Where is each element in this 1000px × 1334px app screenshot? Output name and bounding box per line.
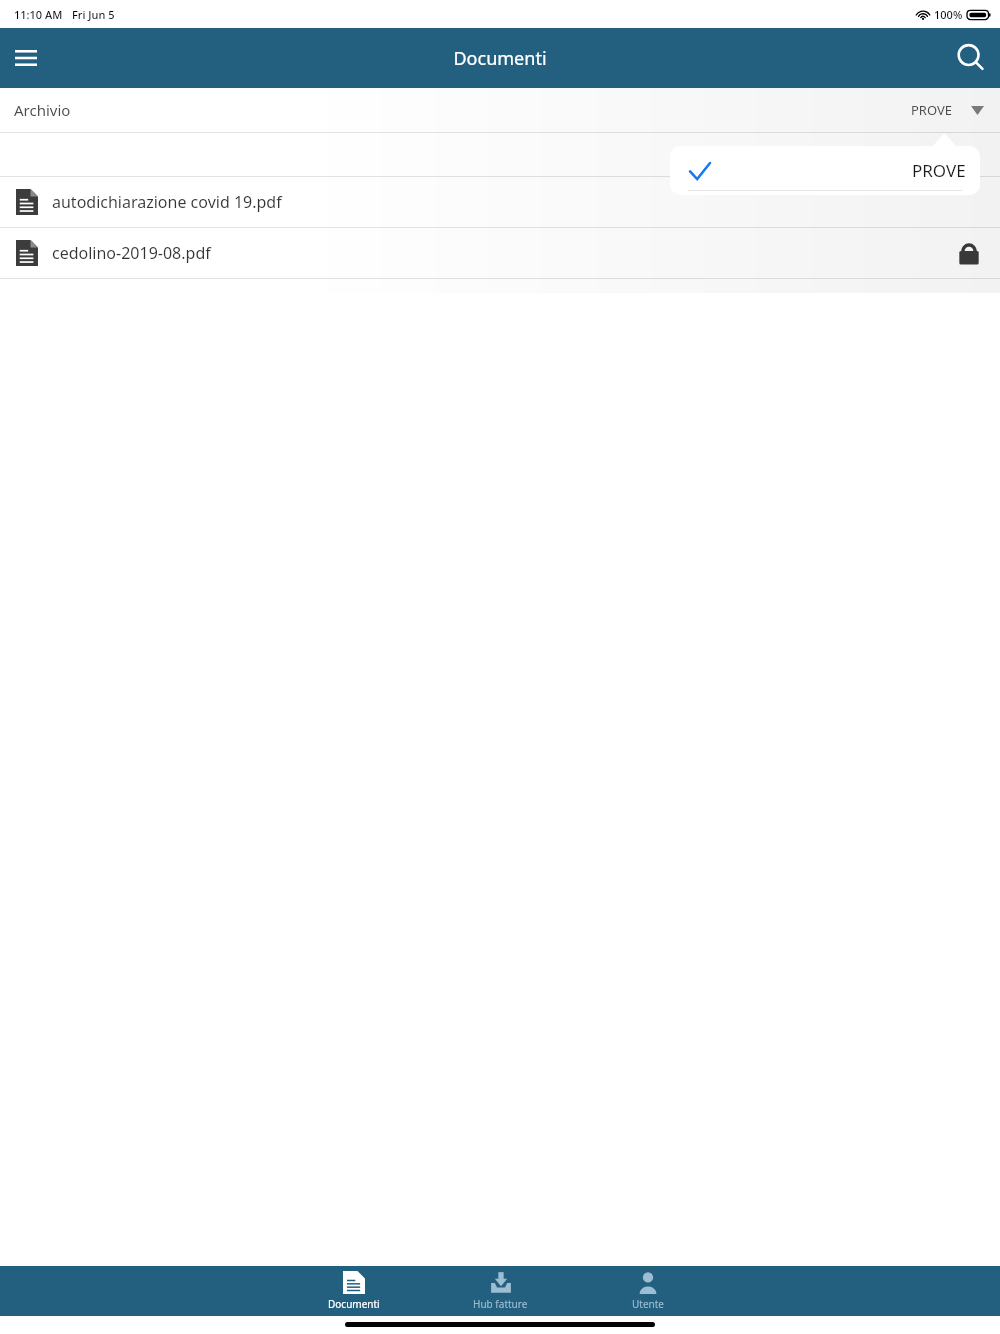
- staticText: Fri Jun 5: [72, 7, 115, 22]
- button[interactable]: Hub fatture: [427, 1266, 574, 1316]
- button[interactable]: cedolino-2019-08.pdf: [0, 228, 1000, 278]
- staticText: Utente: [632, 1297, 664, 1311]
- button[interactable]: autodichiarazione covid 19.pdf: [0, 177, 1000, 227]
- staticText: 11:10 AM: [14, 7, 63, 22]
- staticText: PROVE: [912, 159, 966, 182]
- staticText: Documenti: [328, 1297, 380, 1311]
- button[interactable]: PROVE: [911, 101, 1000, 119]
- button[interactable]: PROVE: [670, 146, 980, 195]
- button[interactable]: Utente: [574, 1266, 721, 1316]
- other: Locked: [954, 238, 984, 268]
- staticText: PROVE: [911, 101, 953, 119]
- staticText: Hub fatture: [473, 1297, 528, 1311]
- button[interactable]: Menu: [0, 32, 52, 84]
- staticText: autodichiarazione covid 19.pdf: [52, 191, 282, 213]
- button[interactable]: Search: [942, 29, 1000, 87]
- staticText: Documenti: [453, 46, 547, 71]
- staticText: 100%: [934, 7, 963, 22]
- staticText: cedolino-2019-08.pdf: [52, 242, 211, 264]
- button[interactable]: Documenti: [280, 1266, 427, 1316]
- staticText: Archivio: [14, 100, 71, 120]
